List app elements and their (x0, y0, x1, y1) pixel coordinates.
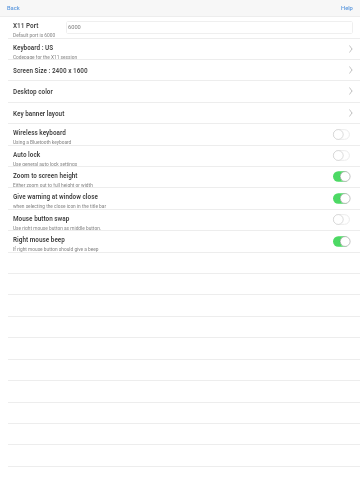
staticText: Wireless keyboard (13, 129, 66, 137)
button[interactable]: 6000 (66, 21, 353, 34)
staticText: Using a Bluetooth keyboard (13, 140, 72, 146)
other: Open (344, 106, 358, 120)
button[interactable]: Keyboard : US (0, 39, 360, 60)
button[interactable]: Switch on (333, 171, 351, 182)
button[interactable]: Switch off (333, 129, 351, 140)
staticText: Auto lock (13, 151, 41, 159)
button[interactable]: Zoom to screen height (0, 167, 360, 188)
staticText: Codepage for the X11 session (13, 55, 78, 60)
button[interactable]: Switch on (333, 193, 351, 204)
staticText: Mouse button swap (13, 215, 70, 223)
staticText: Zoom to screen height (13, 172, 78, 180)
staticText: Use right mouse button as middle button. (13, 226, 102, 231)
staticText: Keyboard : US (13, 44, 54, 52)
button[interactable]: Back (7, 5, 20, 12)
button[interactable]: Right mouse beep (0, 231, 360, 253)
staticText: Either zoom out to full height or width (13, 183, 93, 188)
button[interactable]: Desktop color (0, 81, 360, 103)
other: Open (344, 42, 358, 56)
staticText: Screen Size : 2400 x 1600 (13, 67, 88, 75)
button[interactable]: Screen Size : 2400 x 1600 (0, 60, 360, 81)
staticText: 6000 (68, 24, 81, 31)
staticText: Help (341, 5, 353, 12)
other: Open (344, 84, 358, 98)
staticText: Key banner layout (13, 110, 65, 118)
staticText: Use general auto lock settings (13, 162, 78, 167)
button[interactable]: Help (341, 5, 353, 12)
staticText: Back (7, 5, 20, 12)
button[interactable]: Switch on (333, 236, 351, 247)
button[interactable]: Auto lock (0, 146, 360, 167)
staticText: when selecting the close icon in the tit… (13, 204, 107, 210)
button[interactable]: Wireless keyboard (0, 124, 360, 146)
staticText: Desktop color (13, 88, 53, 96)
staticText: X11 Port (13, 22, 39, 30)
button[interactable]: X11 Port (0, 17, 360, 39)
button[interactable]: Mouse button swap (0, 210, 360, 231)
button[interactable]: Give warning at window close (0, 188, 360, 210)
button[interactable]: Switch off (333, 150, 351, 161)
staticText: Right mouse beep (13, 236, 65, 244)
staticText: Give warning at window close (13, 193, 98, 201)
staticText: If right mouse button should give a beep (13, 247, 99, 253)
button[interactable]: Key banner layout (0, 103, 360, 124)
staticText: Default port is 6000 (13, 33, 56, 39)
other: Open (344, 63, 358, 77)
button[interactable]: Switch off (333, 214, 351, 225)
